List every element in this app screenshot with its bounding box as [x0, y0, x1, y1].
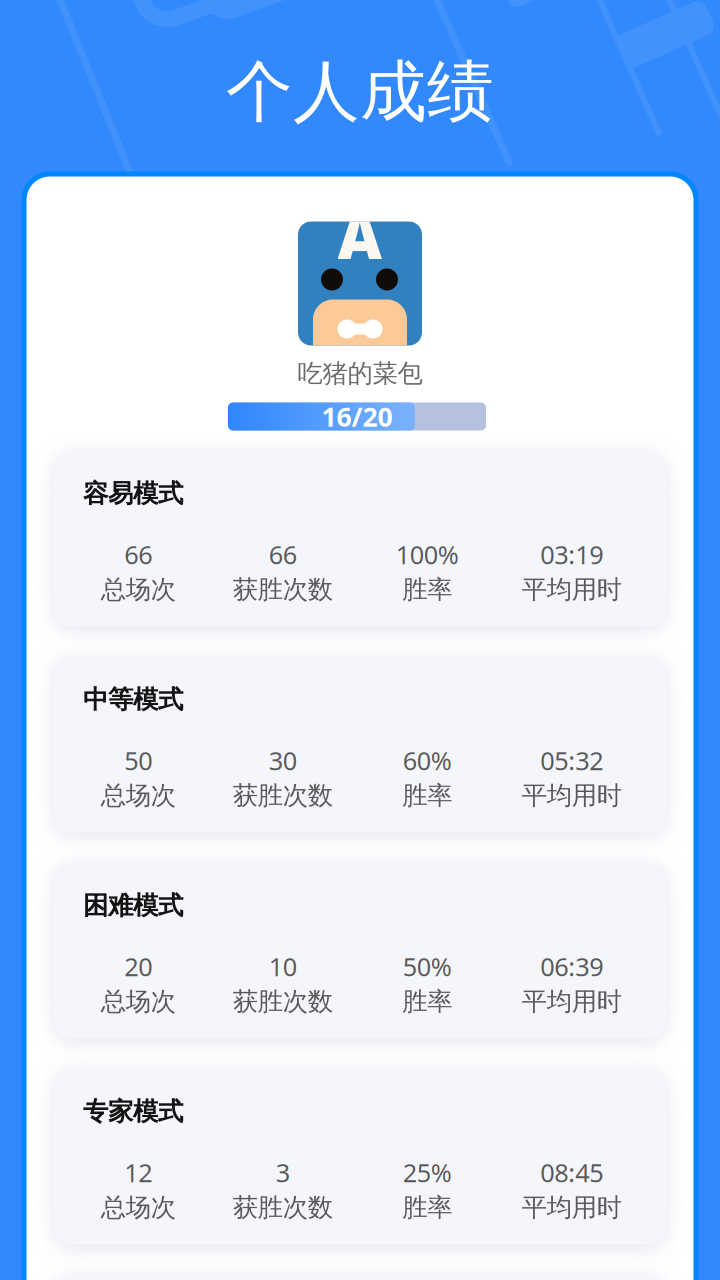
staticText: 16/20 [321, 399, 392, 434]
staticText: 66 [124, 538, 152, 571]
staticText: 获胜次数 [233, 1192, 333, 1223]
staticText: 50 [124, 744, 152, 777]
staticText: 个人成绩 [226, 51, 494, 133]
staticText: 08:45 [540, 1156, 603, 1189]
staticText: 胜率 [402, 986, 452, 1017]
staticText: 20 [124, 950, 152, 983]
staticText: 胜率 [402, 780, 452, 811]
staticText: 3 [276, 1156, 290, 1189]
staticText: 30 [269, 744, 297, 777]
staticText: 总场次 [101, 780, 176, 811]
staticText: 胜率 [402, 1192, 452, 1223]
staticText: 100% [396, 538, 459, 571]
staticText: 12 [124, 1156, 152, 1189]
staticText: 总场次 [101, 574, 176, 605]
staticText: 总场次 [101, 986, 176, 1017]
staticText: 获胜次数 [233, 986, 333, 1017]
staticText: 困难模式 [83, 890, 183, 921]
staticText: 25% [403, 1156, 452, 1189]
staticText: 平均用时 [522, 574, 622, 605]
staticText: 中等模式 [83, 684, 183, 715]
staticText: 60% [403, 744, 452, 777]
staticText: 05:32 [540, 744, 603, 777]
staticText: 胜率 [402, 574, 452, 605]
staticText: 获胜次数 [233, 574, 333, 605]
button[interactable]: 中等模式 [54, 657, 666, 832]
button[interactable]: 容易模式 [54, 451, 666, 626]
staticText: 专家模式 [83, 1096, 183, 1127]
staticText: 03:19 [540, 538, 603, 571]
button[interactable]: 困难模式 [54, 863, 666, 1038]
staticText: 平均用时 [522, 986, 622, 1017]
staticText: 66 [269, 538, 297, 571]
staticText: A [337, 195, 382, 276]
staticText: 平均用时 [522, 780, 622, 811]
staticText: 容易模式 [83, 478, 183, 509]
staticText: 平均用时 [522, 1192, 622, 1223]
staticText: 获胜次数 [233, 780, 333, 811]
staticText: 10 [269, 950, 297, 983]
staticText: 06:39 [540, 950, 603, 983]
staticText: 吃猪的菜包 [297, 358, 422, 389]
button[interactable]: 专家模式 [54, 1069, 666, 1244]
staticText: 总场次 [101, 1192, 176, 1223]
staticText: 50% [403, 950, 452, 983]
